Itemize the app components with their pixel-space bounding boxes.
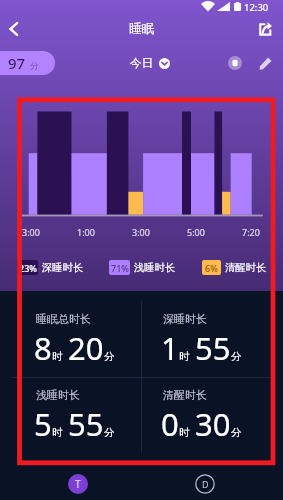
button[interactable]: Edit: [254, 52, 276, 74]
staticText: 12:30: [244, 1, 269, 14]
staticText: 0: [161, 403, 179, 445]
staticText: T: [75, 477, 81, 491]
staticText: 时: [52, 426, 63, 439]
staticText: 1:00: [77, 226, 95, 238]
staticText: 分: [104, 350, 115, 363]
staticText: 浅睡时长: [36, 388, 80, 402]
staticText: 71%: [111, 262, 129, 274]
staticText: 97: [8, 53, 26, 73]
button[interactable]: 深睡时长: [161, 312, 277, 372]
button[interactable]: Share: [252, 16, 278, 42]
staticText: D: [202, 478, 209, 490]
staticText: 55: [195, 327, 231, 369]
staticText: 时: [52, 350, 63, 363]
staticText: 分: [231, 350, 242, 363]
button[interactable]: Watch: [224, 52, 246, 74]
staticText: 3:00: [132, 226, 150, 238]
staticText: 今日: [130, 56, 153, 70]
button[interactable]: 71%: [109, 260, 176, 275]
staticText: 5:00: [187, 226, 205, 238]
button[interactable]: 浅睡时长: [34, 388, 150, 448]
staticText: 时: [179, 426, 190, 439]
staticText: 20: [68, 327, 104, 369]
staticText: 分: [104, 426, 115, 439]
button[interactable]: Timer: [47, 465, 108, 500]
staticText: 6%: [205, 262, 218, 274]
staticText: 5: [34, 403, 52, 445]
button[interactable]: Back: [1, 16, 27, 42]
staticText: 55: [68, 403, 104, 445]
button[interactable]: 睡眠总时长: [34, 312, 150, 372]
staticText: 时: [179, 350, 190, 363]
staticText: 清醒时长: [225, 261, 267, 274]
staticText: 1: [161, 327, 179, 369]
button[interactable]: 6%: [202, 260, 267, 275]
staticText: 睡眠: [129, 21, 155, 37]
staticText: 3:00: [22, 226, 40, 238]
staticText: 分: [30, 61, 39, 72]
staticText: 睡眠总时长: [36, 312, 91, 326]
staticText: 清醒时长: [163, 388, 207, 402]
button[interactable]: 今日: [130, 56, 170, 70]
button[interactable]: 97: [0, 51, 55, 75]
staticText: 深睡时长: [42, 261, 84, 274]
staticText: 30: [195, 403, 231, 445]
staticText: 深睡时长: [163, 312, 207, 326]
staticText: 分: [231, 426, 242, 439]
button[interactable]: 清醒时长: [161, 388, 277, 448]
staticText: 8: [34, 327, 52, 369]
button[interactable]: 23%: [17, 260, 84, 275]
button[interactable]: Day: [174, 465, 235, 500]
staticText: 23%: [19, 262, 37, 274]
staticText: 浅睡时长: [134, 261, 176, 274]
staticText: 7:20: [242, 226, 260, 238]
